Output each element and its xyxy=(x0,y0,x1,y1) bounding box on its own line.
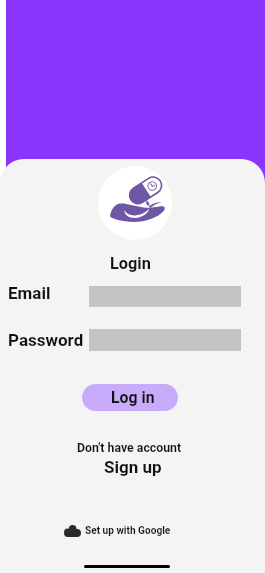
button[interactable]: Log in xyxy=(82,384,178,411)
staticText: Sign up xyxy=(104,457,162,477)
staticText: Password xyxy=(8,330,84,350)
staticText: Email xyxy=(8,283,51,303)
button[interactable]: Google xyxy=(64,525,171,537)
staticText: Log in xyxy=(111,388,155,407)
button[interactable]: Sign up xyxy=(98,455,168,479)
staticText: Set up with Google xyxy=(85,525,171,537)
other: Google xyxy=(64,525,81,537)
staticText: Don't have account xyxy=(77,441,182,455)
staticText: Login xyxy=(110,254,151,273)
